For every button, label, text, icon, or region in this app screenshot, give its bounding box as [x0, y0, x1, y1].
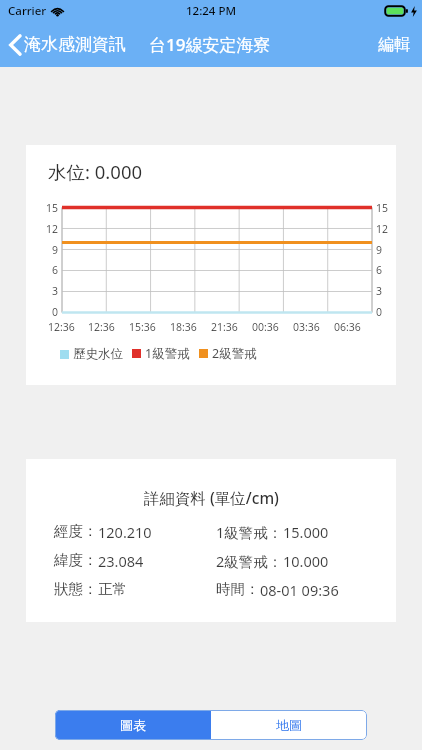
staticText: 00:36 — [252, 320, 279, 334]
staticText: 6 — [51, 263, 58, 277]
staticText: 經度： — [54, 522, 98, 540]
staticText: 15.000 — [283, 522, 329, 542]
staticText: 歷史水位 — [73, 346, 123, 362]
staticText: 03:36 — [293, 320, 320, 334]
staticText: 120.210 — [98, 522, 152, 542]
staticText: 3 — [51, 284, 58, 298]
staticText: 08-01 09:36 — [260, 580, 339, 600]
staticText: 2級警戒 — [212, 345, 257, 362]
staticText: 0 — [51, 305, 58, 319]
staticText: 3 — [376, 284, 383, 298]
other: Back — [10, 35, 21, 55]
staticText: 詳細資料 (單位/cm) — [144, 487, 279, 508]
staticText: 12 — [376, 222, 389, 236]
staticText: 15 — [45, 201, 58, 215]
staticText: 狀態： — [54, 580, 98, 598]
staticText: 0 — [376, 305, 383, 319]
button[interactable]: 圖表 — [55, 710, 211, 740]
staticText: 23.084 — [98, 551, 144, 571]
staticText: 地圖 — [276, 717, 302, 733]
staticText: 6 — [376, 263, 383, 277]
staticText: 9 — [51, 243, 58, 257]
staticText: 正常 — [98, 580, 127, 598]
button[interactable]: Back — [0, 30, 132, 59]
staticText: 9 — [376, 243, 383, 257]
staticText: 水位: 0.000 — [48, 159, 143, 184]
staticText: 編輯 — [378, 35, 410, 55]
staticText: 12 — [45, 222, 58, 236]
staticText: 12:36 — [48, 320, 75, 334]
staticText: 10.000 — [283, 551, 329, 571]
staticText: 15 — [376, 201, 389, 215]
staticText: 圖表 — [120, 717, 146, 733]
staticText: 淹水感測資訊 — [24, 34, 126, 55]
button[interactable]: 地圖 — [211, 710, 367, 740]
staticText: 12:24 PM — [186, 3, 237, 19]
staticText: 15:36 — [129, 320, 156, 334]
staticText: 台19線安定海寮 — [149, 33, 271, 56]
staticText: 1級警戒 — [145, 345, 190, 362]
staticText: 12:36 — [88, 320, 115, 334]
staticText: 21:36 — [211, 320, 238, 334]
staticText: 2級警戒： — [216, 551, 283, 571]
staticText: 1級警戒： — [216, 522, 283, 542]
staticText: 18:36 — [170, 320, 197, 334]
staticText: 緯度： — [54, 551, 98, 569]
staticText: 06:36 — [334, 320, 361, 334]
staticText: 時間： — [216, 580, 260, 598]
button[interactable]: 編輯 — [366, 29, 422, 61]
staticText: Carrier — [8, 3, 47, 19]
